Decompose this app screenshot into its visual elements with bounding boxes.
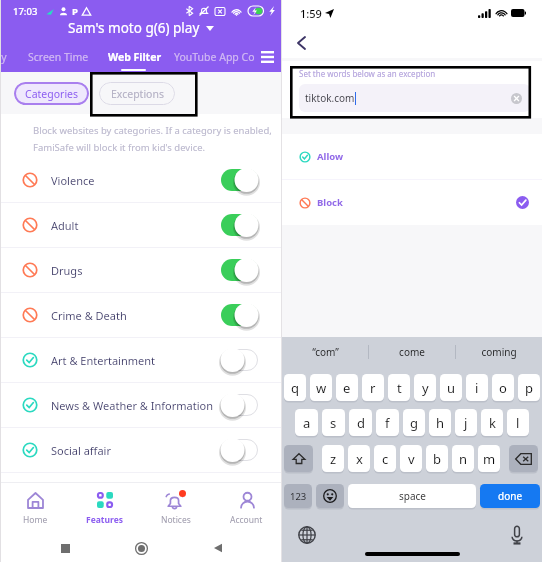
staticText: p <box>525 379 533 397</box>
button[interactable] <box>221 482 258 508</box>
button[interactable]: Back <box>206 536 230 560</box>
button[interactable]: Back <box>290 32 312 54</box>
button[interactable]: News & Weather & Information <box>0 383 282 427</box>
button[interactable]: Categories <box>14 82 89 105</box>
staticText: space <box>399 489 426 503</box>
staticText: b <box>433 450 441 468</box>
button[interactable]: coming <box>456 337 542 367</box>
button[interactable]: come <box>369 337 455 367</box>
staticText: i <box>475 379 479 397</box>
button[interactable]: n <box>452 445 474 472</box>
button[interactable] <box>221 167 258 193</box>
button[interactable]: u <box>440 374 462 401</box>
button[interactable]: d <box>349 409 372 436</box>
button[interactable] <box>221 302 258 328</box>
button[interactable]: Shift <box>284 445 313 472</box>
button[interactable]: i <box>466 374 488 401</box>
staticText: YouTube App Co <box>174 50 255 64</box>
staticText: g <box>410 414 418 432</box>
staticText: Screen Time <box>28 50 89 64</box>
button[interactable]: “com” <box>282 337 368 367</box>
button[interactable]: Exceptions <box>99 82 175 105</box>
button[interactable]: b <box>426 445 448 472</box>
button[interactable]: Recents <box>53 536 77 560</box>
staticText: come <box>399 345 425 359</box>
button[interactable]: v <box>400 445 422 472</box>
button[interactable]: e <box>336 374 358 401</box>
button[interactable]: Violence <box>0 158 282 202</box>
button[interactable] <box>221 257 258 283</box>
button[interactable]: Allow <box>282 134 542 179</box>
button[interactable]: Menu <box>257 47 277 67</box>
staticText: Set the words below as an exception <box>299 68 436 79</box>
button[interactable]: x <box>348 445 370 472</box>
button[interactable]: Emoji <box>316 484 344 508</box>
staticText: done <box>498 489 523 503</box>
button[interactable]: tiktok.com <box>299 84 530 112</box>
button[interactable]: Crime & Death <box>0 293 282 337</box>
button[interactable] <box>221 212 258 238</box>
button[interactable]: Social affair <box>0 428 282 472</box>
button[interactable] <box>221 392 258 418</box>
button[interactable]: c <box>374 445 396 472</box>
button[interactable]: Home <box>0 483 70 533</box>
staticText: Sam's moto g(6) play <box>68 19 200 37</box>
button[interactable]: a <box>295 409 318 436</box>
staticText: 123 <box>290 490 307 503</box>
button[interactable] <box>221 437 258 463</box>
button[interactable]: Drugs <box>0 248 282 292</box>
staticText: j <box>464 414 468 432</box>
button[interactable]: Games <box>0 473 282 517</box>
button[interactable]: Screen Time <box>28 50 89 64</box>
button[interactable] <box>221 347 258 373</box>
button[interactable]: Clear <box>511 93 522 104</box>
button[interactable]: o <box>492 374 514 401</box>
staticText: m <box>483 450 496 468</box>
button[interactable]: t <box>388 374 410 401</box>
staticText: Account <box>230 514 263 526</box>
staticText: Violence <box>51 173 95 188</box>
button[interactable]: Language <box>296 524 318 546</box>
button[interactable]: w <box>310 374 332 401</box>
button[interactable]: k <box>481 409 503 436</box>
button[interactable]: space <box>348 484 476 508</box>
staticText: v <box>408 450 415 468</box>
staticText: n <box>459 450 468 468</box>
button[interactable]: g <box>403 409 425 436</box>
button[interactable]: Web Filter <box>108 50 162 64</box>
button[interactable]: j <box>455 409 477 436</box>
button[interactable]: Block <box>282 180 542 225</box>
button[interactable]: h <box>429 409 451 436</box>
button[interactable]: Features <box>70 483 140 533</box>
button[interactable]: Art & Entertainment <box>0 338 282 382</box>
button[interactable]: q <box>284 374 306 401</box>
staticText: Adult <box>51 218 79 233</box>
button[interactable]: p <box>518 374 540 401</box>
staticText: Drugs <box>51 263 83 278</box>
staticText: Crime & Death <box>51 308 127 323</box>
button[interactable]: Sam's moto g(6) play <box>62 17 220 39</box>
button[interactable]: r <box>362 374 384 401</box>
button[interactable]: l <box>507 409 529 436</box>
button[interactable]: s <box>322 409 345 436</box>
button[interactable]: y <box>414 374 436 401</box>
button[interactable]: Home <box>129 536 153 560</box>
staticText: c <box>382 450 389 468</box>
button[interactable]: Numbers <box>284 484 312 508</box>
staticText: P <box>72 5 78 18</box>
staticText: 1:59 <box>300 6 322 21</box>
staticText: w <box>316 379 327 397</box>
button[interactable]: YouTube App Co <box>174 50 255 64</box>
button[interactable]: Dictate <box>506 524 528 546</box>
staticText: Art & Entertainment <box>51 353 155 368</box>
button[interactable]: m <box>478 445 500 472</box>
button[interactable]: Notices <box>140 483 211 533</box>
button[interactable]: done <box>480 484 540 508</box>
button[interactable]: Backspace <box>509 445 538 472</box>
button[interactable]: Account <box>211 483 282 533</box>
button[interactable]: f <box>376 409 399 436</box>
button[interactable]: ry <box>0 50 7 64</box>
button[interactable]: Adult <box>0 203 282 247</box>
button[interactable]: z <box>322 445 344 472</box>
